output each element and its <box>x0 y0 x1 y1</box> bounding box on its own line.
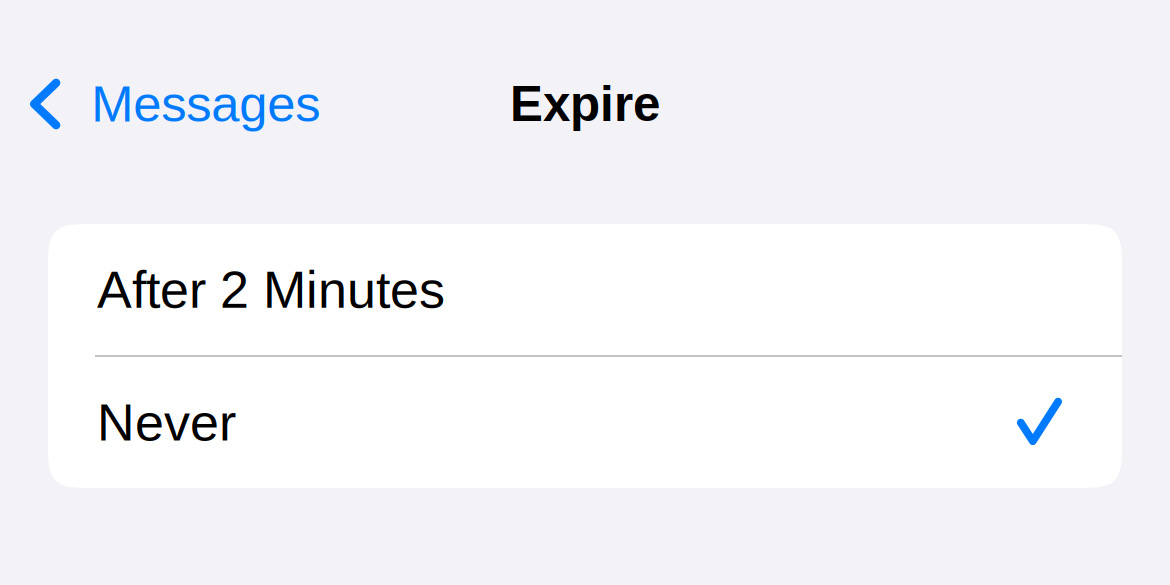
staticText: Expire <box>510 76 660 131</box>
button[interactable]: Back to Messages <box>0 38 320 170</box>
staticText: Messages <box>91 76 320 132</box>
button[interactable]: Never <box>48 357 1122 488</box>
staticText: After 2 Minutes <box>97 261 445 319</box>
staticText: Never <box>97 393 236 451</box>
button[interactable]: After 2 Minutes <box>48 224 1122 355</box>
